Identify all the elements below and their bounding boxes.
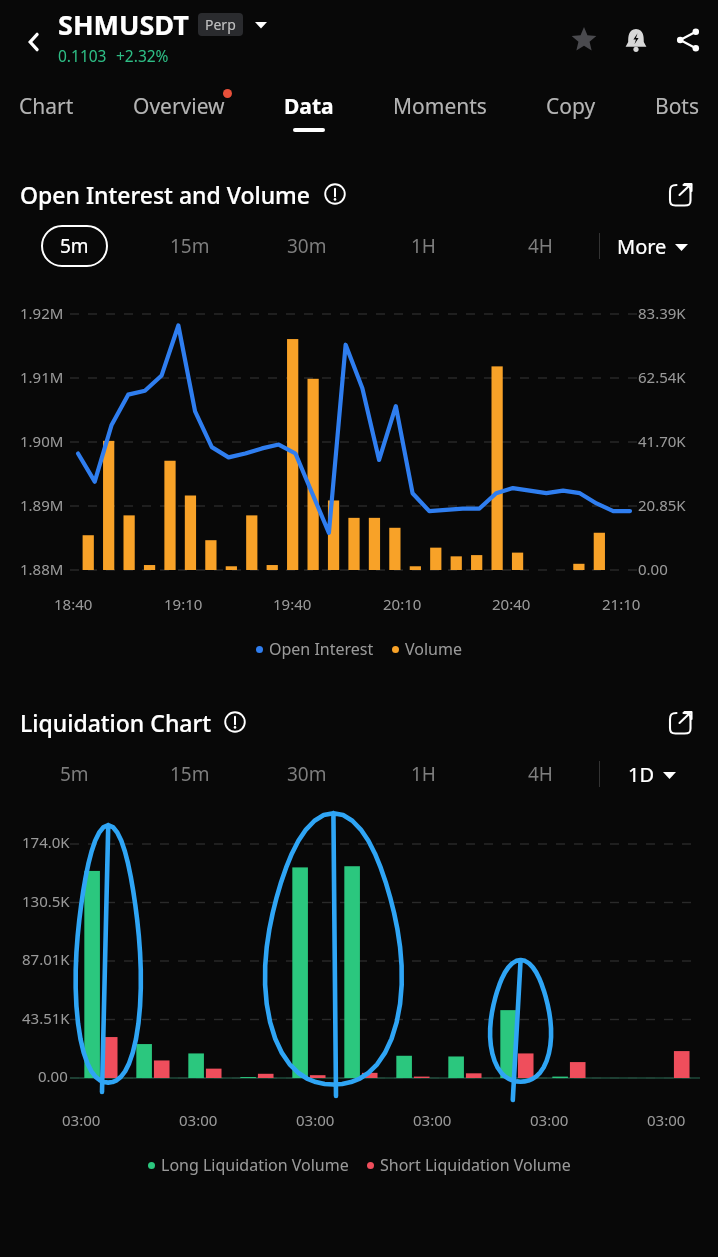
button[interactable]: Favorite [562,18,606,62]
staticText: Perp [205,15,236,34]
staticText: Volume [405,638,462,660]
button[interactable]: 15m [132,233,248,259]
button[interactable]: 5m [16,225,132,267]
button[interactable]: Chart [14,92,79,132]
staticText: 0.00 [38,1066,68,1086]
staticText: 1H [411,761,436,787]
button[interactable]: Select contract [250,14,272,36]
button[interactable]: 15m [132,761,248,787]
staticText: Long Liquidation Volume [161,1154,349,1176]
staticText: 5m [60,761,89,787]
staticText: Overview [133,92,225,121]
staticText: 20:40 [492,594,531,614]
button[interactable]: Info about Open Interest and Volume [320,179,350,209]
staticText: 1.92M [20,303,64,323]
staticText: 1H [411,233,436,259]
staticText: 4H [528,761,553,787]
staticText: 03:00 [413,1110,452,1130]
button[interactable]: 4H [482,761,599,787]
button[interactable]: Open full screen [660,702,700,742]
staticText: Open Interest [269,638,374,660]
button[interactable]: Data [279,92,339,132]
staticText: 15m [170,233,210,259]
staticText: 20:10 [383,594,422,614]
staticText: 87.01K [22,949,70,969]
button[interactable]: Perp [205,15,236,34]
button[interactable]: 5m [16,761,132,787]
staticText: 1.89M [20,495,64,515]
staticText: Data [284,92,334,121]
button[interactable]: Bots [650,92,704,132]
staticText: 1D [628,761,655,788]
staticText: 19:10 [164,594,203,614]
staticText: 4H [528,233,553,259]
staticText: 83.39K [638,303,686,323]
staticText: 130.5K [22,891,70,911]
button[interactable]: More [600,233,704,260]
staticText: Chart [19,92,74,121]
staticText: 41.70K [638,431,686,451]
staticText: 15m [170,761,210,787]
button[interactable]: Back [10,18,58,66]
staticText: 0.1103 [58,45,107,66]
staticText: 0.00 [638,559,668,579]
staticText: 03:00 [179,1110,218,1130]
staticText: Copy [546,92,596,121]
button[interactable]: 30m [248,233,365,259]
staticText: 21:10 [602,594,641,614]
staticText: 03:00 [62,1110,101,1130]
staticText: 1.91M [20,367,64,387]
button[interactable]: 1D [600,761,704,788]
button[interactable]: 1H [365,761,482,787]
staticText: 30m [287,761,327,787]
button[interactable]: Moments [388,92,492,132]
staticText: Liquidation Chart [20,707,211,738]
staticText: 1.90M [20,431,64,451]
button[interactable]: Copy [541,92,601,132]
button[interactable]: Share [666,18,710,62]
button[interactable]: 4H [482,233,599,259]
staticText: SHMUSDT [58,6,189,43]
button[interactable]: 1H [365,233,482,259]
staticText: Short Liquidation Volume [380,1154,571,1176]
staticText: 03:00 [296,1110,335,1130]
staticText: 43.51K [22,1008,70,1028]
staticText: 174.0K [22,832,70,852]
staticText: 1.88M [20,559,64,579]
button[interactable]: 30m [248,761,365,787]
staticText: 03:00 [647,1110,686,1130]
button[interactable]: Overview [128,92,230,132]
staticText: Bots [655,92,699,121]
staticText: Open Interest and Volume [20,179,311,210]
staticText: 03:00 [530,1110,569,1130]
staticText: Moments [393,92,487,121]
staticText: 62.54K [638,367,686,387]
button[interactable]: Price alert [614,18,658,62]
staticText: 5m [60,233,89,259]
staticText: 30m [287,233,327,259]
staticText: 20.85K [638,495,686,515]
staticText: More [617,233,667,260]
button[interactable]: Open full screen [660,174,700,214]
staticText: 19:40 [273,594,312,614]
staticText: +2.32% [116,45,169,66]
staticText: 18:40 [54,594,93,614]
button[interactable]: Info about Liquidation Chart [220,707,250,737]
